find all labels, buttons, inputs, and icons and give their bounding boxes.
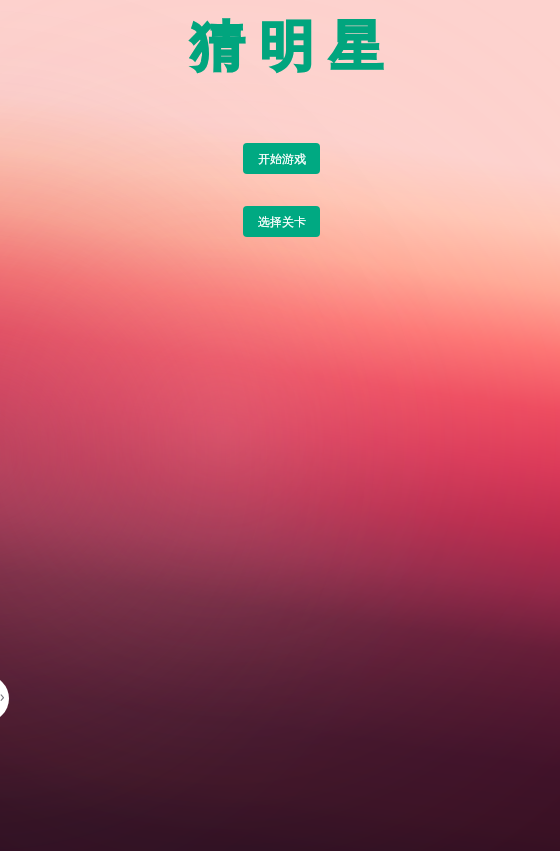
staticText: 猜明星 (190, 13, 398, 81)
button[interactable]: 开始游戏 (243, 143, 320, 174)
staticText: 开始游戏 (258, 151, 306, 166)
button[interactable]: 选择关卡 (243, 206, 320, 237)
staticText: 选择关卡 (258, 214, 306, 229)
button[interactable]: Open drawer (0, 675, 9, 722)
